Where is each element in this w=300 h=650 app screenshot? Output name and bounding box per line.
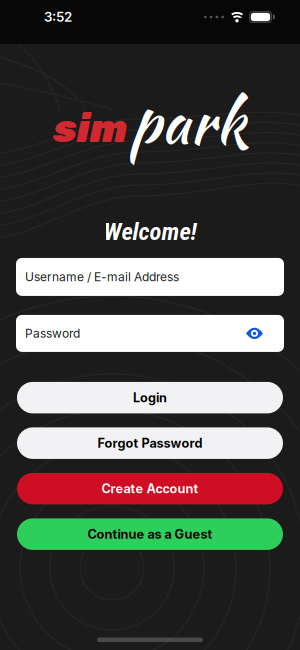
staticText: sim [53,105,128,152]
button[interactable]: Login [17,382,283,413]
staticText: Welcome! [103,217,196,246]
staticText: Create Account [101,481,198,496]
button[interactable]: Create Account [17,473,283,504]
staticText: Forgot Password [97,435,202,451]
staticText: 3:52 [44,9,72,25]
staticText: Username / E-mail Address [25,270,179,284]
staticText: Continue as a Guest [87,526,212,542]
button[interactable]: Password [16,315,284,352]
staticText: Login [133,390,167,405]
button[interactable]: Show password [246,328,263,339]
staticText: Password [25,326,80,341]
staticText: park [130,77,247,166]
button[interactable]: Username / E-mail Address [16,258,284,296]
button[interactable]: Forgot Password [17,427,283,459]
button[interactable]: Continue as a Guest [17,518,283,550]
